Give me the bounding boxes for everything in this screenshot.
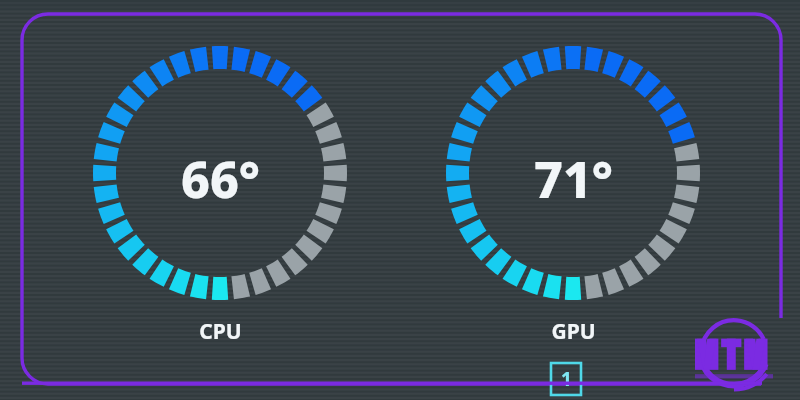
button[interactable]: CPU temperature 66 degrees [120, 145, 320, 203]
button[interactable]: GPU [513, 316, 633, 346]
button[interactable]: Page 1 [551, 363, 581, 395]
staticText: 1 [561, 366, 572, 392]
staticText: CPU [199, 317, 242, 346]
button[interactable]: GPU temperature 71 degrees [473, 145, 673, 203]
button[interactable]: CPU [160, 316, 280, 346]
staticText: 71° [534, 145, 613, 203]
staticText: GPU [551, 317, 596, 346]
staticText: 66° [181, 145, 260, 203]
